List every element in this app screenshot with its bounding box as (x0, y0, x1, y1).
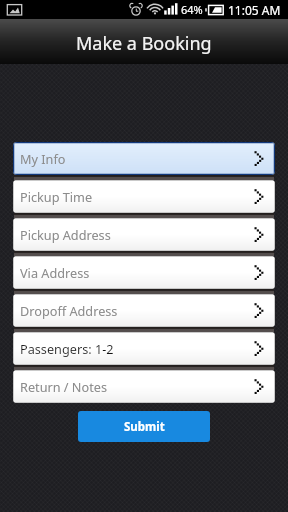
staticText: Via Address (20, 264, 90, 281)
staticText: My Info (20, 150, 66, 167)
button[interactable]: My Info (13, 142, 275, 175)
staticText: Pickup Time (20, 188, 93, 205)
staticText: Dropoff Address (20, 302, 118, 319)
button[interactable]: Pickup Address (13, 218, 275, 251)
staticText: 11:05 AM (228, 2, 281, 18)
button[interactable]: Passengers: 1-2 (13, 332, 275, 365)
staticText: Submit (124, 419, 165, 435)
button[interactable]: Pickup Time (13, 180, 275, 213)
staticText: Make a Booking (76, 31, 212, 56)
button[interactable]: Dropoff Address (13, 294, 275, 327)
staticText: Pickup Address (20, 226, 111, 243)
staticText: 64% (181, 2, 203, 17)
staticText: Return / Notes (20, 378, 107, 395)
button[interactable]: Via Address (13, 256, 275, 289)
staticText: Passengers: 1-2 (20, 340, 114, 357)
button[interactable]: Submit (78, 411, 210, 442)
button[interactable]: Return / Notes (13, 370, 275, 403)
